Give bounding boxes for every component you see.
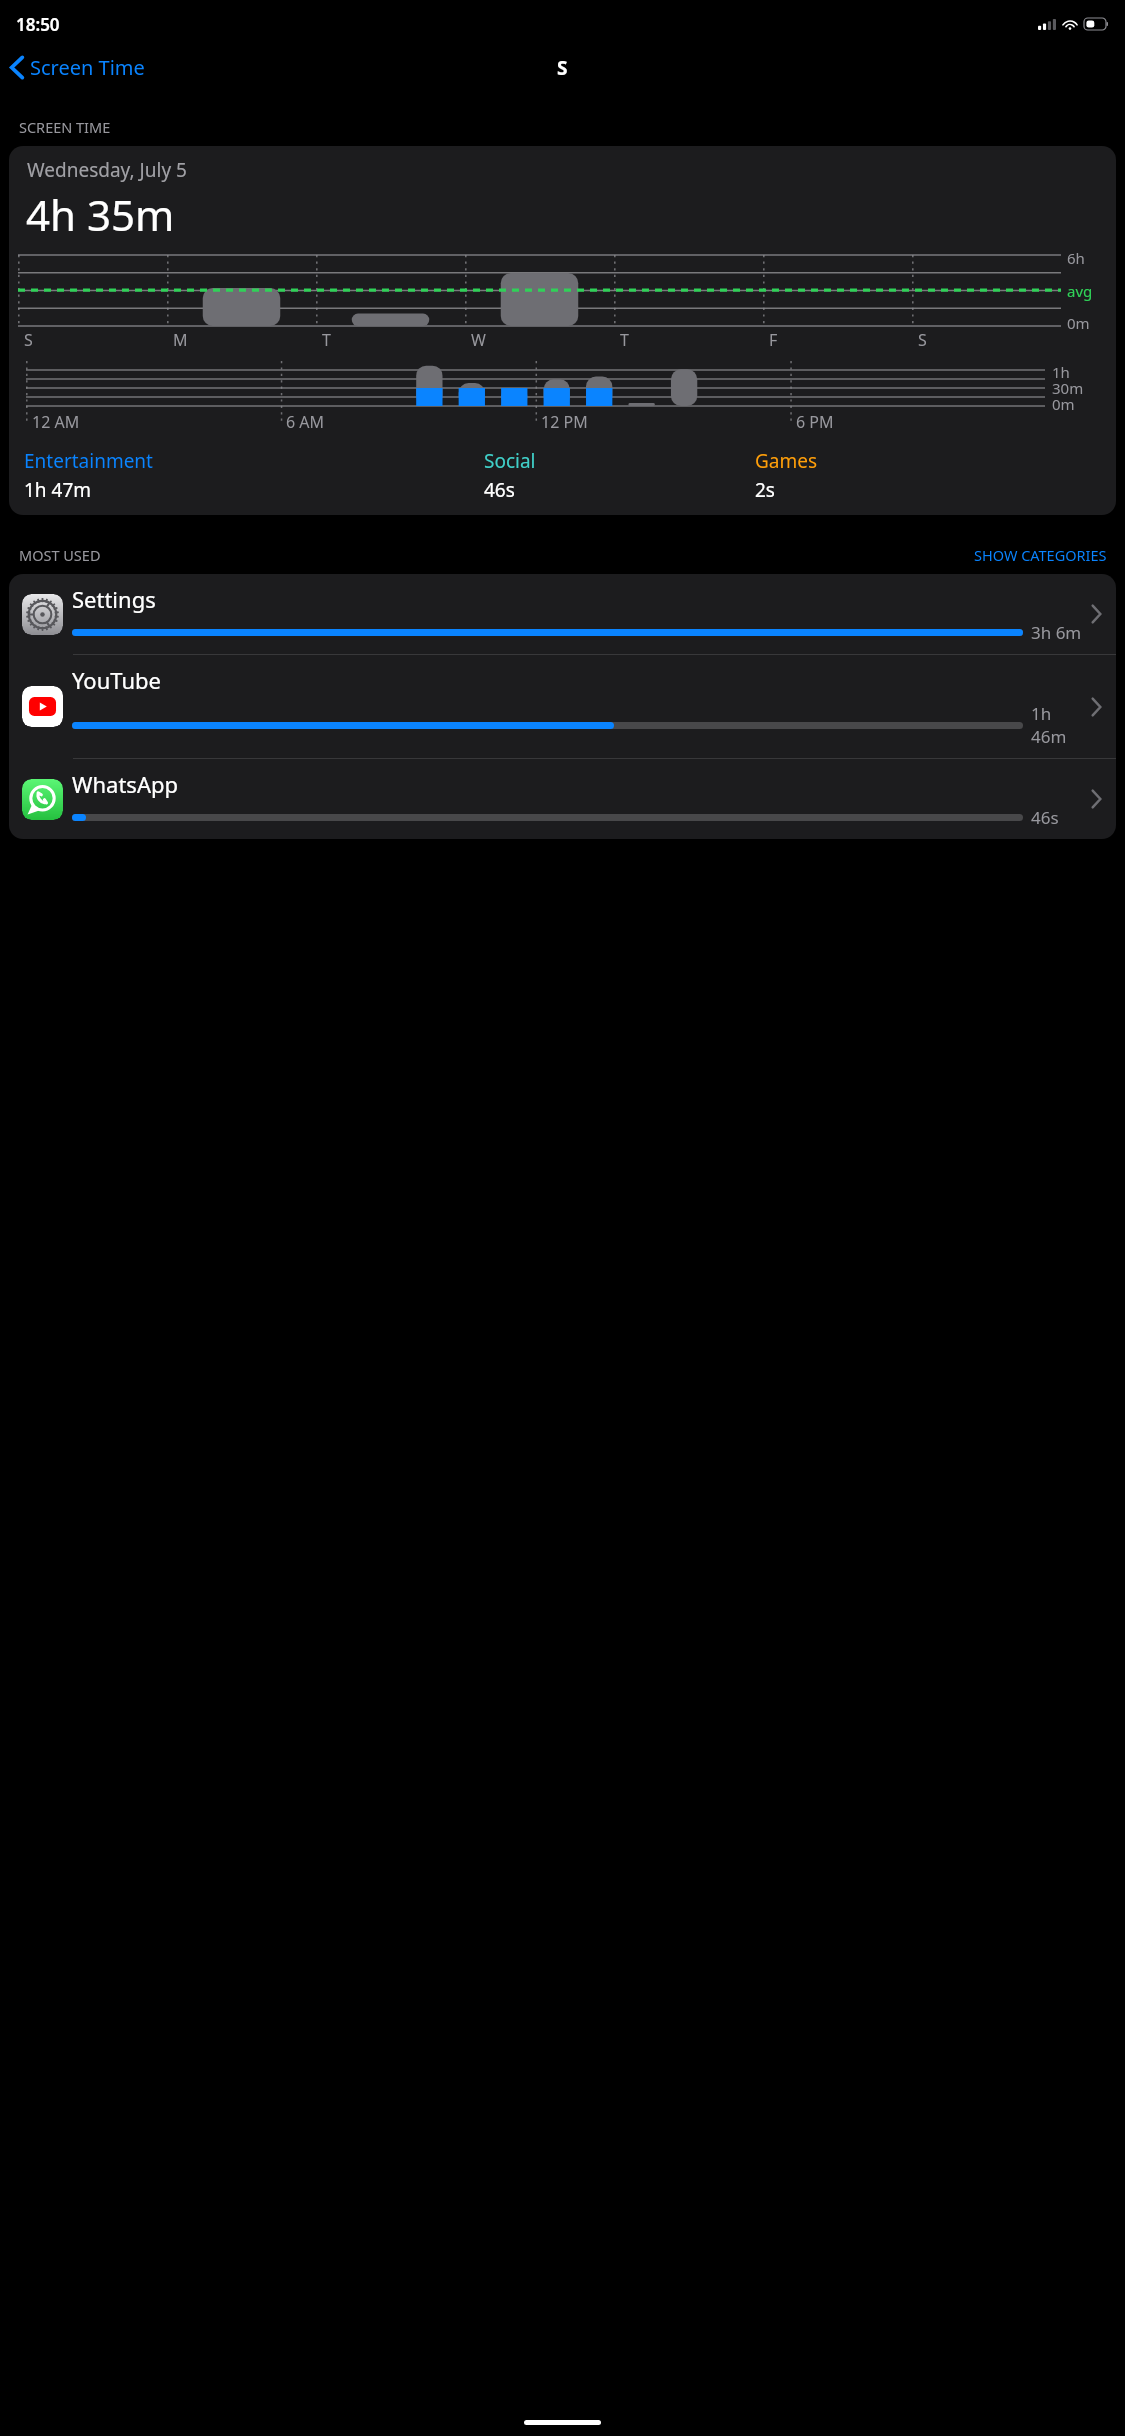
staticText: SCREEN TIME bbox=[19, 117, 111, 137]
staticText: Screen Time bbox=[30, 54, 145, 81]
staticText: avg bbox=[1067, 281, 1093, 301]
staticText: Wednesday, July 5 bbox=[27, 157, 187, 183]
staticText: 1h 47m bbox=[24, 477, 92, 503]
staticText: T bbox=[322, 329, 331, 351]
staticText: YouTube bbox=[72, 665, 161, 695]
button[interactable]: Screen Time bbox=[6, 50, 149, 85]
other: Open WhatsApp details bbox=[1091, 789, 1102, 809]
staticText: S bbox=[557, 55, 568, 81]
staticText: 6h bbox=[1067, 248, 1085, 268]
staticText: Entertainment bbox=[24, 448, 153, 474]
staticText: Social bbox=[484, 448, 536, 474]
button[interactable]: Wednesday, July 5 bbox=[9, 146, 1116, 515]
button[interactable]: Games bbox=[755, 448, 1103, 503]
staticText: 6 PM bbox=[796, 411, 834, 433]
button[interactable]: SHOW CATEGORIES bbox=[974, 545, 1107, 565]
staticText: F bbox=[769, 329, 778, 351]
button[interactable]: Settings bbox=[9, 574, 1116, 654]
staticText: 1h 46m bbox=[1031, 702, 1087, 748]
other: Open Settings details bbox=[1091, 604, 1102, 624]
staticText: SHOW CATEGORIES bbox=[974, 545, 1107, 565]
staticText: WhatsApp bbox=[72, 769, 178, 799]
staticText: 0m bbox=[1052, 394, 1075, 414]
staticText: 3h 6m bbox=[1031, 621, 1082, 644]
staticText: MOST USED bbox=[19, 545, 101, 565]
staticText: 12 PM bbox=[541, 411, 588, 433]
staticText: 2s bbox=[755, 477, 775, 503]
staticText: 4h 35m bbox=[26, 186, 175, 243]
staticText: M bbox=[173, 329, 188, 351]
staticText: 0m bbox=[1067, 313, 1090, 333]
staticText: Games bbox=[755, 448, 818, 474]
staticText: 18:50 bbox=[16, 13, 60, 36]
button[interactable]: YouTube bbox=[9, 655, 1116, 758]
staticText: W bbox=[471, 329, 486, 351]
staticText: Settings bbox=[72, 584, 156, 614]
staticText: S bbox=[918, 329, 927, 351]
staticText: 30m bbox=[1052, 378, 1084, 398]
staticText: 12 AM bbox=[32, 411, 80, 433]
staticText: T bbox=[620, 329, 629, 351]
button[interactable]: Entertainment bbox=[24, 448, 484, 503]
staticText: 46s bbox=[484, 477, 515, 503]
other: Open YouTube details bbox=[1091, 697, 1102, 717]
button[interactable]: WhatsApp bbox=[9, 759, 1116, 839]
staticText: 1h bbox=[1052, 362, 1070, 382]
staticText: S bbox=[24, 329, 33, 351]
staticText: 46s bbox=[1031, 806, 1059, 829]
staticText: 6 AM bbox=[286, 411, 325, 433]
button[interactable]: Social bbox=[484, 448, 755, 503]
